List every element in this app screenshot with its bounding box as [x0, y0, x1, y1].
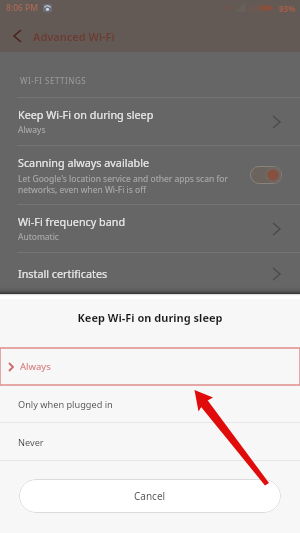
button[interactable]: Only when plugged in — [0, 385, 300, 423]
staticText: Install certificates — [18, 266, 108, 281]
staticText: Always — [20, 360, 51, 373]
staticText: Let Google's location service and other … — [18, 173, 228, 195]
staticText: Scanning always available — [18, 155, 150, 170]
staticText: Advanced Wi-Fi — [33, 29, 115, 44]
staticText: Cancel — [134, 489, 166, 503]
button[interactable]: Cancel — [19, 479, 281, 513]
staticText: 93% — [279, 3, 296, 14]
button[interactable]: Always — [0, 348, 300, 385]
staticText: Keep Wi-Fi on during sleep — [0, 310, 300, 325]
button[interactable]: Toggle scanning always available — [250, 166, 282, 184]
staticText: Never — [18, 436, 44, 449]
button[interactable]: Wi-Fi frequency band — [0, 205, 300, 252]
staticText: Only when plugged in — [18, 398, 113, 411]
button[interactable]: Scanning always available — [0, 146, 300, 204]
staticText: Wi-Fi frequency band — [18, 214, 126, 229]
staticText: WI-FI SETTINGS — [20, 75, 87, 86]
staticText: Keep Wi-Fi on during sleep — [18, 107, 154, 122]
button[interactable]: Back — [8, 24, 26, 48]
button[interactable]: Keep Wi-Fi on during sleep — [0, 98, 300, 145]
staticText: Automatic — [18, 231, 59, 243]
button[interactable]: Never — [0, 423, 300, 461]
staticText: 8:06 PM — [6, 2, 39, 14]
button[interactable]: Install certificates — [0, 253, 300, 294]
staticText: Always — [18, 124, 46, 136]
